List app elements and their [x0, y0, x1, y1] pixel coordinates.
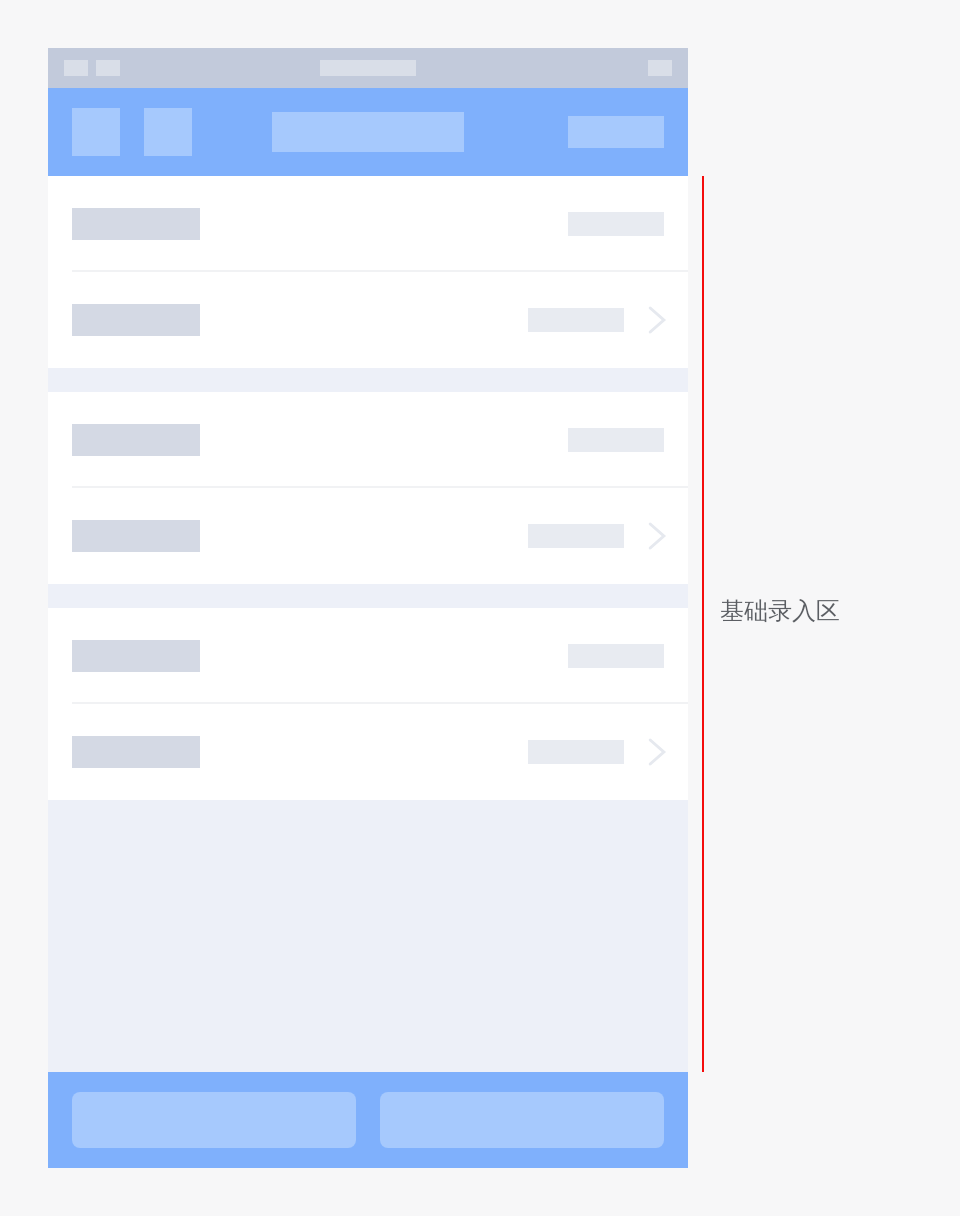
button[interactable]: Field 4	[48, 488, 688, 584]
button[interactable]: Field 2	[48, 272, 688, 368]
button[interactable]: Field 6	[48, 704, 688, 800]
button[interactable]: Field 1	[48, 176, 688, 272]
button[interactable]: Field 3	[48, 392, 688, 488]
button[interactable]: Field 5	[48, 608, 688, 704]
staticText: 基础录入区	[720, 596, 840, 626]
